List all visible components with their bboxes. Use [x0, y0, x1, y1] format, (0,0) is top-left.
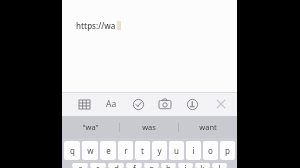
button[interactable]: Camera	[157, 94, 173, 114]
button[interactable]: g	[144, 163, 159, 168]
button[interactable]: j	[178, 163, 193, 168]
button[interactable]: f	[126, 163, 142, 168]
staticText: g	[149, 163, 154, 168]
staticText: h	[166, 163, 171, 168]
button[interactable]: d	[108, 163, 124, 168]
staticText: Aa	[106, 98, 117, 110]
staticText: was	[142, 122, 156, 132]
button[interactable]: Insert table	[76, 94, 92, 114]
button[interactable]: t	[135, 141, 150, 160]
staticText: want	[199, 122, 217, 132]
staticText: a	[78, 163, 83, 168]
staticText: q	[70, 145, 75, 156]
button[interactable]: Close keyboard	[213, 94, 229, 114]
button[interactable]: e	[100, 141, 116, 160]
staticText: e	[106, 145, 111, 156]
button[interactable]: Checklist	[130, 94, 146, 114]
button[interactable]: p	[220, 141, 235, 160]
staticText: t	[141, 145, 144, 156]
staticText: i	[192, 145, 195, 156]
staticText: r	[124, 145, 128, 156]
button[interactable]: o	[203, 141, 218, 160]
button[interactable]: l	[212, 163, 227, 168]
button[interactable]: h	[161, 163, 176, 168]
button[interactable]: Markup	[184, 94, 200, 114]
staticText: y	[157, 145, 162, 156]
button[interactable]: "wa"	[62, 116, 119, 138]
staticText: j	[184, 163, 187, 168]
button[interactable]: want	[179, 116, 237, 138]
button[interactable]: q	[64, 141, 80, 160]
button[interactable]: r	[118, 141, 133, 160]
button[interactable]: k	[195, 163, 210, 168]
staticText: d	[114, 163, 119, 168]
button[interactable]: u	[169, 141, 184, 160]
button[interactable]: a	[72, 163, 88, 168]
staticText: p	[225, 145, 230, 156]
button[interactable]: was	[120, 116, 178, 138]
button[interactable]: s	[90, 163, 106, 168]
staticText: u	[174, 145, 179, 156]
button[interactable]: i	[186, 141, 201, 160]
button[interactable]: Text format	[103, 94, 119, 114]
staticText: s	[96, 163, 100, 168]
staticText: k	[200, 163, 205, 168]
button[interactable]: w	[82, 141, 98, 160]
button[interactable]: https://wa	[62, 0, 237, 92]
staticText: "wa"	[82, 122, 99, 132]
staticText: w	[87, 145, 94, 156]
staticText: f	[133, 163, 136, 168]
staticText: l	[218, 163, 221, 168]
staticText: https://wa	[76, 20, 116, 31]
staticText: o	[208, 145, 213, 156]
button[interactable]: y	[152, 141, 167, 160]
